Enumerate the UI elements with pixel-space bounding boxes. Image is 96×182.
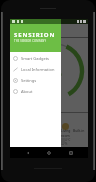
button[interactable]: Recent apps <box>67 149 75 157</box>
staticText: Settings <box>21 78 37 83</box>
button[interactable]: Back <box>24 149 32 157</box>
button[interactable] <box>10 118 88 134</box>
staticText: Living room <box>61 128 73 138</box>
staticText: SENSIRION <box>14 31 56 39</box>
button[interactable]: Smart Gadgets <box>10 53 61 64</box>
staticText: % <box>58 71 62 77</box>
button[interactable]: Local Information <box>10 64 61 75</box>
staticText: About <box>21 89 33 94</box>
staticText: 46 <box>47 66 57 77</box>
button[interactable]: About <box>10 86 61 97</box>
staticText: 22.4 °C 46 % <box>61 138 73 146</box>
button[interactable]: Settings <box>10 75 61 86</box>
staticText: THE SENSOR COMPANY <box>14 39 47 43</box>
staticText: Built-in <box>73 128 85 133</box>
staticText: Smart Gadgets <box>21 56 50 61</box>
button[interactable]: Home <box>45 149 53 157</box>
staticText: Local Information <box>21 67 55 72</box>
